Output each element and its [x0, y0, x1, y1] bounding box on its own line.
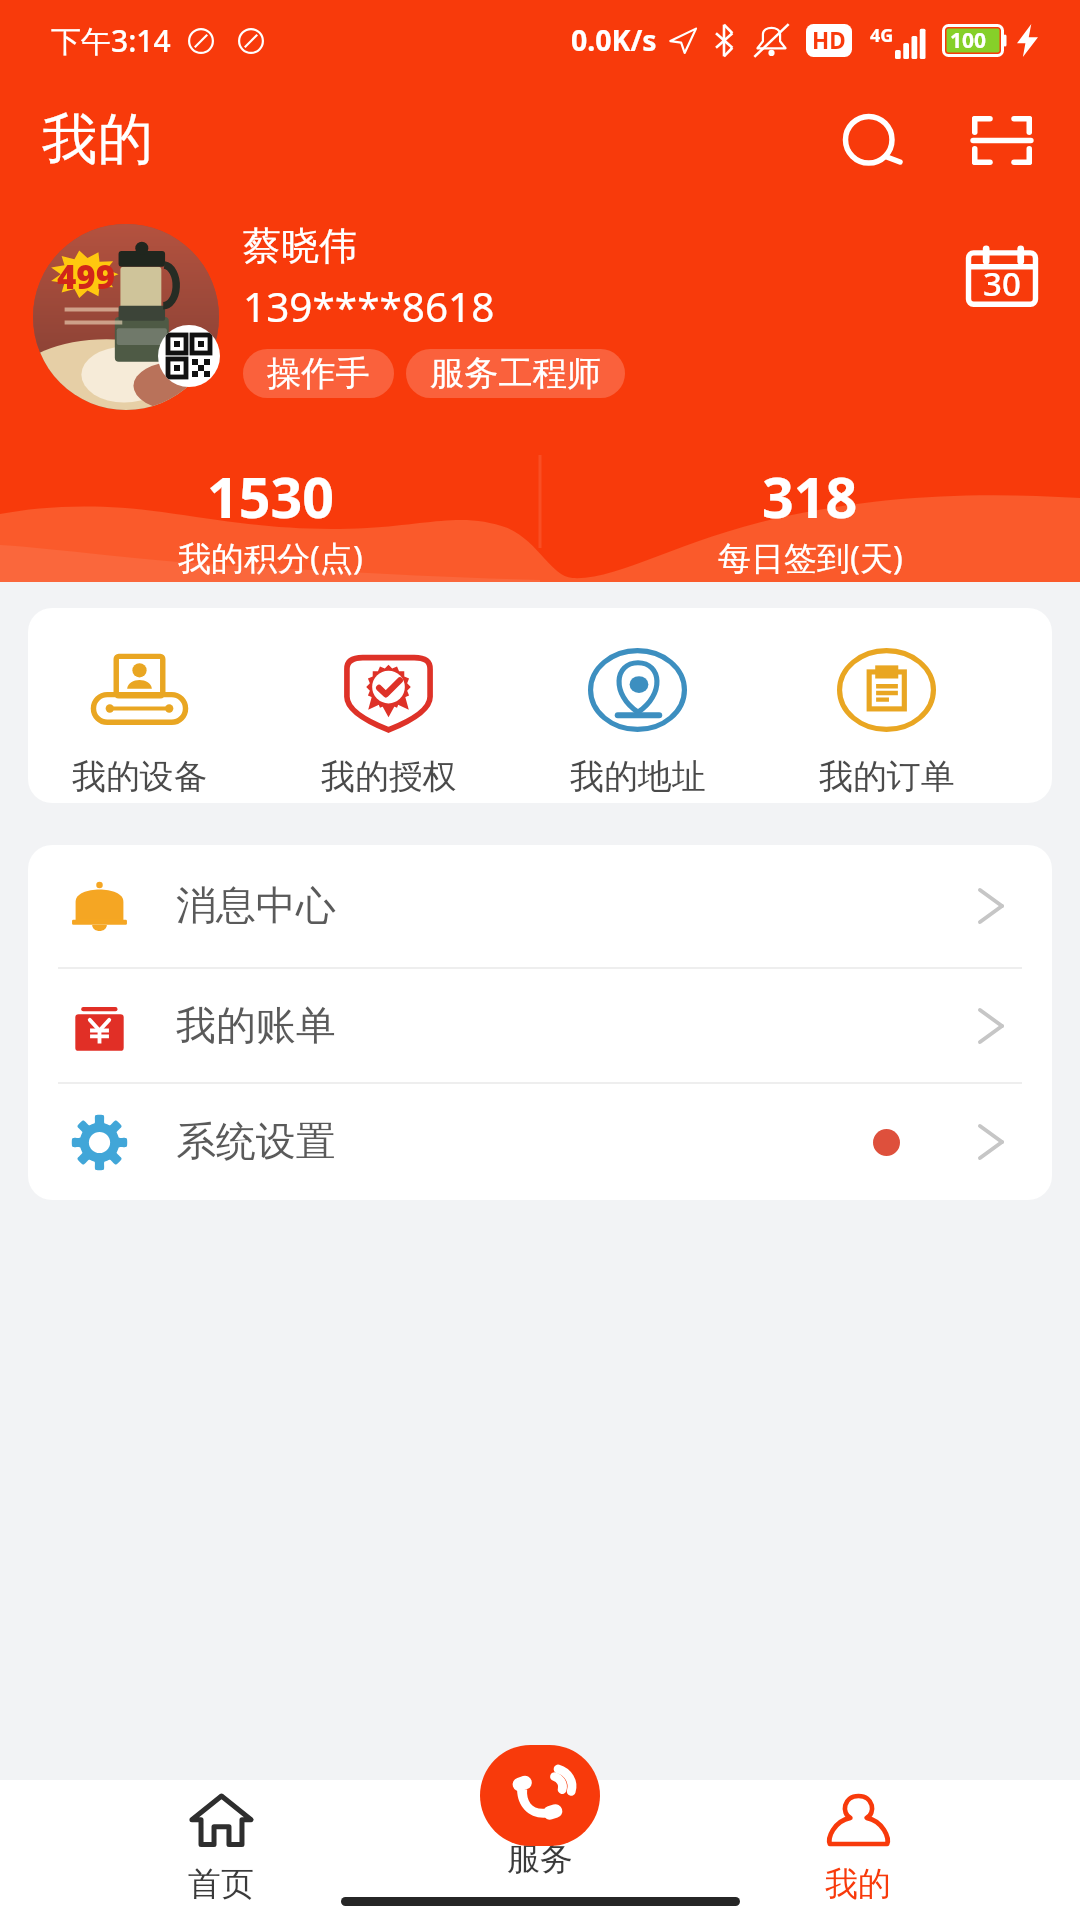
staticText: 我的授权 [321, 755, 457, 798]
button[interactable]: 我的授权 [264, 608, 513, 803]
button[interactable]: Call service [480, 1745, 600, 1846]
staticText: 蔡晓伟 [243, 222, 358, 270]
staticText: 0.0K/s [571, 21, 657, 60]
button[interactable]: 服务工程师 [406, 349, 625, 398]
staticText: 我的地址 [570, 755, 706, 798]
staticText: 系统设置 [176, 1117, 336, 1167]
button[interactable]: 系统设置 [28, 1084, 1052, 1200]
staticText: 下午3:14 [51, 20, 171, 61]
staticText: 首页 [188, 1863, 254, 1905]
button[interactable]: Search [810, 80, 936, 200]
staticText: 服务工程师 [430, 352, 601, 395]
staticText: 每日签到(天) [718, 535, 903, 580]
staticText: 操作手 [267, 352, 370, 395]
staticText: 499 [57, 254, 116, 299]
staticText: 4G [870, 23, 894, 48]
staticText: 100 [950, 26, 987, 55]
button[interactable]: 首页 [101, 1780, 341, 1920]
button[interactable]: Profile avatar [33, 224, 219, 410]
button[interactable]: 318 [540, 459, 1080, 580]
button[interactable]: 我的设备 [28, 608, 264, 803]
staticText: 消息中心 [176, 881, 336, 931]
button[interactable]: 1530 [0, 459, 540, 580]
staticText: HD [812, 25, 846, 56]
button[interactable]: Sign in calendar [957, 237, 1047, 315]
staticText: 我的 [825, 1863, 891, 1905]
button[interactable]: 我的订单 [762, 608, 1011, 803]
button[interactable]: My QR code [158, 325, 220, 387]
staticText: 我的 [42, 105, 153, 175]
button[interactable]: 操作手 [243, 349, 394, 398]
button[interactable]: 我的地址 [513, 608, 762, 803]
staticText: 1530 [207, 459, 334, 535]
button[interactable]: Scan QR code [939, 80, 1065, 200]
staticText: 我的账单 [176, 1001, 336, 1051]
staticText: 我的订单 [819, 755, 955, 798]
staticText: 服务 [507, 1838, 573, 1880]
button[interactable]: 我的 [738, 1780, 978, 1920]
staticText: 我的设备 [72, 755, 208, 798]
staticText: 318 [762, 459, 858, 535]
staticText: 我的积分(点) [178, 535, 363, 580]
button[interactable]: 我的账单 [28, 969, 1052, 1082]
staticText: 139****8618 [243, 279, 495, 334]
button[interactable]: 消息中心 [28, 845, 1052, 967]
staticText: 30 [983, 261, 1021, 306]
